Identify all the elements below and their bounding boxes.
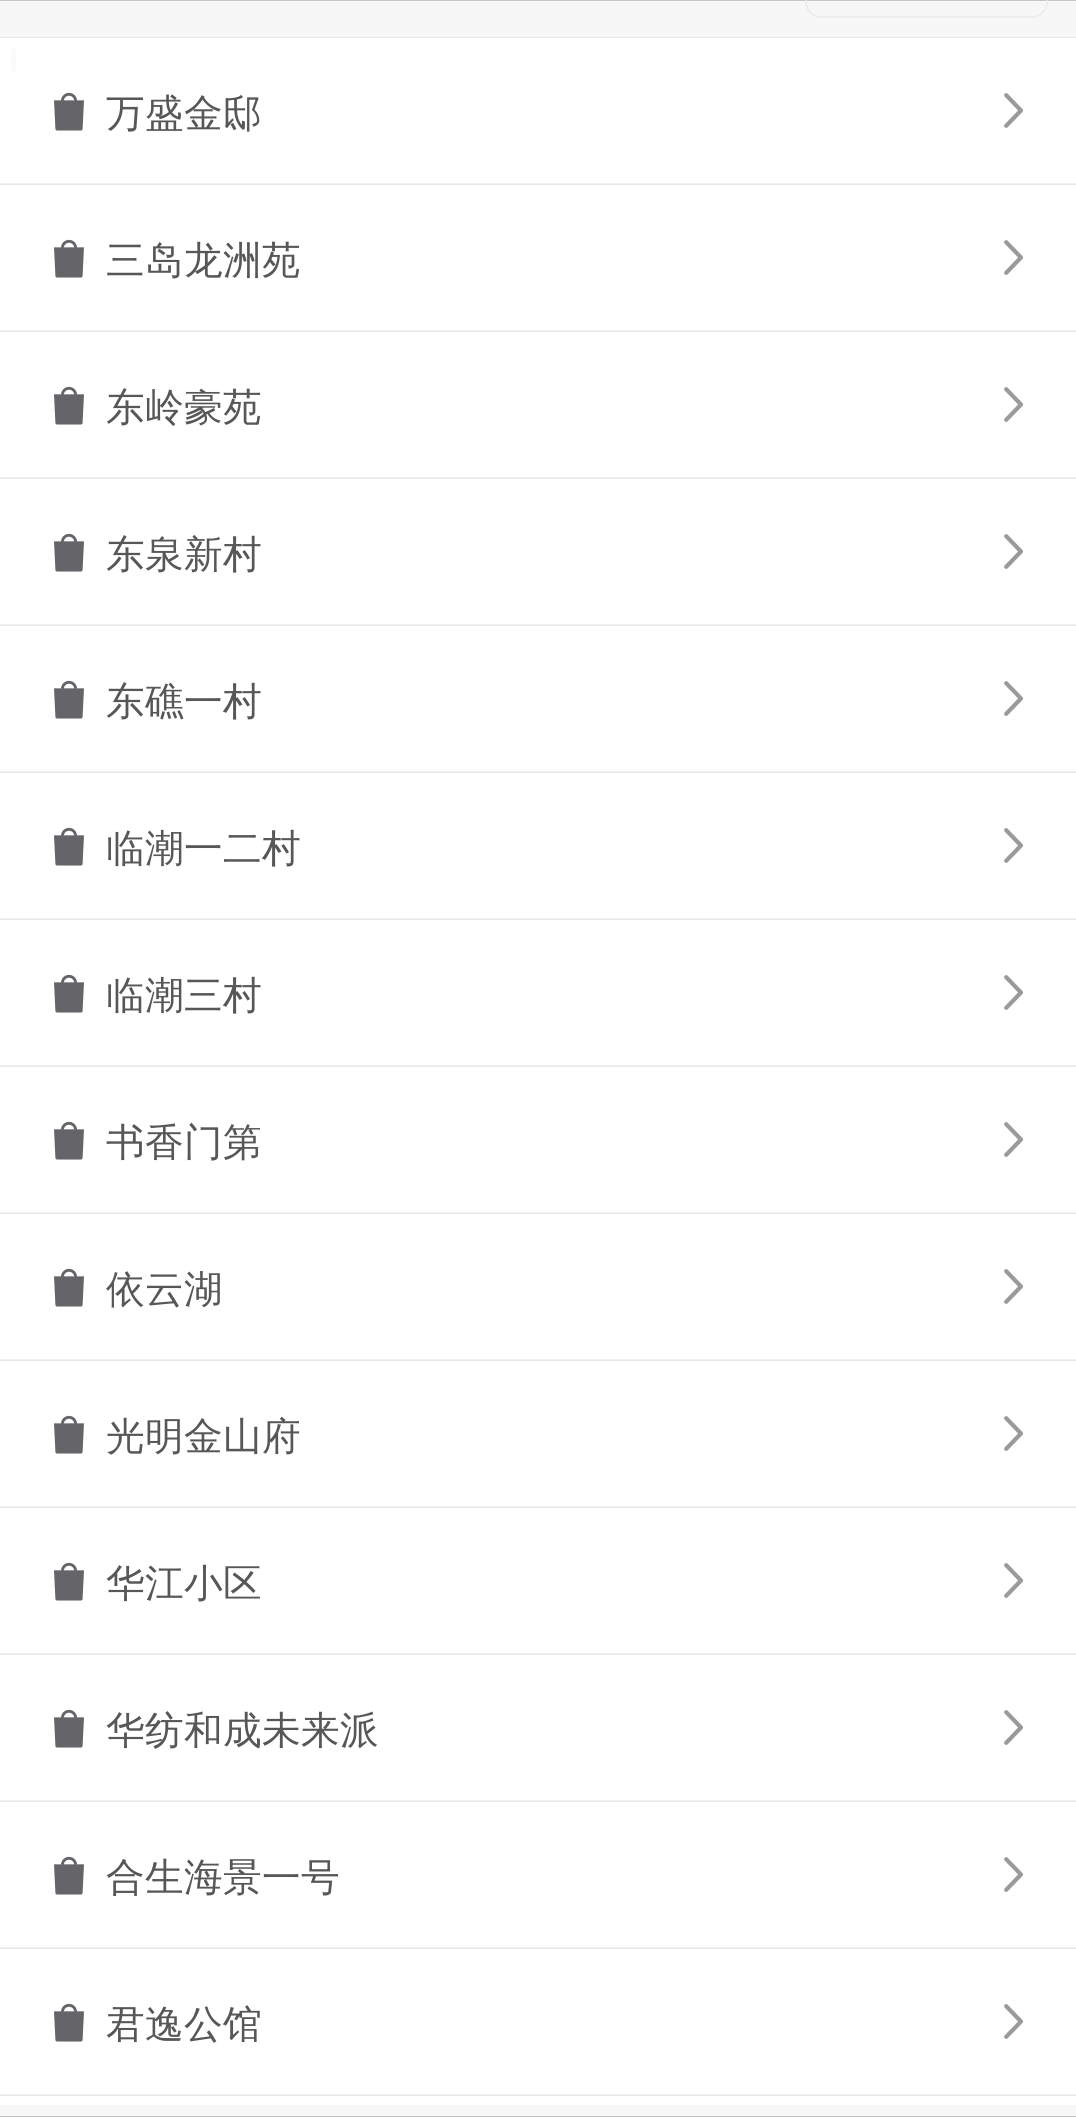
button[interactable]: 书香门第 (0, 1067, 1076, 1214)
staticText: 临潮三村 (106, 972, 262, 1019)
staticText: 三岛龙洲苑 (106, 237, 301, 284)
button[interactable]: 三岛龙洲苑 (0, 185, 1076, 332)
button[interactable]: 万盛金邸 (0, 38, 1076, 185)
button[interactable]: 光明金山府 (0, 1361, 1076, 1508)
button[interactable]: Search (806, 0, 1047, 17)
staticText: 东岭豪苑 (106, 384, 262, 431)
staticText: 书香门第 (106, 1119, 262, 1166)
staticText: 合生海景一号 (106, 1854, 340, 1901)
button[interactable]: 东礁一村 (0, 626, 1076, 773)
button[interactable]: 华纺和成未来派 (0, 1655, 1076, 1802)
staticText: 临潮一二村 (106, 825, 301, 872)
staticText: 华纺和成未来派 (106, 1707, 379, 1754)
button[interactable]: 东岭豪苑 (0, 332, 1076, 479)
staticText: 万盛金邸 (106, 90, 262, 137)
button[interactable]: 临潮一二村 (0, 773, 1076, 920)
button[interactable]: 东泉新村 (0, 479, 1076, 626)
staticText: 华江小区 (106, 1560, 262, 1607)
button[interactable]: 合生海景一号 (0, 1802, 1076, 1949)
staticText: 东泉新村 (106, 531, 262, 578)
staticText: 东礁一村 (106, 678, 262, 725)
staticText: 光明金山府 (106, 1413, 301, 1460)
button[interactable]: 临潮三村 (0, 920, 1076, 1067)
staticText: 君逸公馆 (106, 2001, 262, 2048)
button[interactable]: 华江小区 (0, 1508, 1076, 1655)
button[interactable]: 君逸公馆 (0, 1949, 1076, 2096)
button[interactable]: 依云湖 (0, 1214, 1076, 1361)
staticText: 依云湖 (106, 1266, 223, 1313)
